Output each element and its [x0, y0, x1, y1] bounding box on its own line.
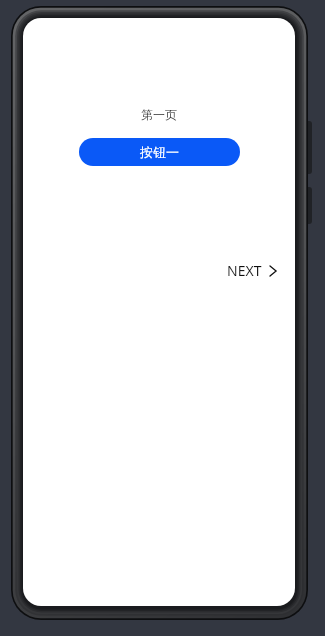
- staticText: NEXT: [227, 261, 262, 280]
- staticText: 第一页: [141, 107, 177, 122]
- button[interactable]: 按钮一: [79, 138, 240, 166]
- staticText: 按钮一: [140, 144, 179, 160]
- button[interactable]: NEXT: [227, 261, 277, 280]
